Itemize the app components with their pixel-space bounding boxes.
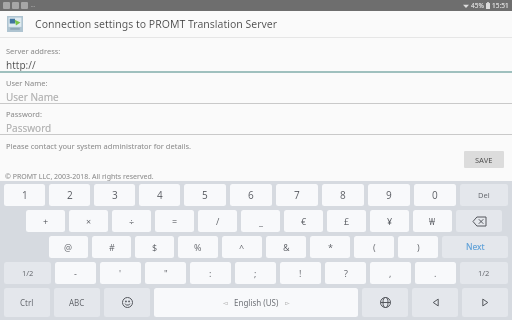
button[interactable]: !: [280, 262, 321, 284]
button[interactable]: *: [310, 236, 350, 258]
staticText: &: [283, 241, 290, 253]
staticText: ?: [344, 267, 348, 279]
staticText: ¥: [387, 215, 393, 227]
staticText: © PROMT LLC, 2003-2018. All rights reser…: [5, 172, 154, 181]
button[interactable]: ": [145, 262, 186, 284]
staticText: /: [216, 215, 220, 227]
button[interactable]: 6: [230, 184, 272, 206]
staticText: ABC: [69, 297, 85, 308]
staticText: 1: [22, 188, 28, 202]
staticText: 4: [157, 188, 163, 202]
button[interactable]: ₩: [413, 210, 452, 232]
staticText: SAVE: [475, 155, 493, 165]
button[interactable]: +: [26, 210, 65, 232]
staticText: :: [209, 267, 212, 279]
button[interactable]: 1/2: [460, 262, 508, 284]
button[interactable]: Move right: [462, 288, 508, 317]
button[interactable]: 1: [4, 184, 45, 206]
staticText: ...: [31, 2, 36, 9]
staticText: (: [373, 241, 376, 253]
button[interactable]: /: [198, 210, 237, 232]
button[interactable]: 2: [49, 184, 90, 206]
button[interactable]: 5: [184, 184, 226, 206]
button[interactable]: ?: [325, 262, 366, 284]
staticText: ₩: [429, 215, 436, 227]
button[interactable]: 8: [322, 184, 364, 206]
staticText: -: [74, 267, 77, 279]
staticText: 1/2: [22, 268, 34, 278]
button[interactable]: ,: [370, 262, 411, 284]
button[interactable]: &: [266, 236, 306, 258]
staticText: !: [299, 267, 302, 279]
button[interactable]: ¥: [370, 210, 409, 232]
staticText: Server address:: [6, 46, 61, 56]
staticText: User Name:: [6, 78, 48, 88]
button[interactable]: User Name: [0, 90, 512, 103]
button[interactable]: Move left: [412, 288, 458, 317]
staticText: 1/2: [478, 268, 490, 278]
button[interactable]: Del: [460, 184, 508, 206]
button[interactable]: #: [92, 236, 131, 258]
button[interactable]: ABC: [54, 288, 100, 317]
staticText: Password:: [6, 109, 42, 119]
staticText: 6: [248, 188, 254, 202]
button[interactable]: (: [354, 236, 394, 258]
staticText: .: [434, 267, 437, 279]
staticText: 2: [67, 188, 73, 202]
staticText: ;: [254, 267, 257, 279]
staticText: 8: [340, 188, 346, 202]
button[interactable]: =: [155, 210, 194, 232]
staticText: 5: [202, 188, 208, 202]
button[interactable]: ': [100, 262, 141, 284]
staticText: Del: [478, 190, 490, 200]
button[interactable]: 3: [94, 184, 135, 206]
staticText: http://: [6, 58, 36, 71]
staticText: 7: [294, 188, 300, 202]
button[interactable]: 4: [139, 184, 180, 206]
button[interactable]: 1/2: [4, 262, 51, 284]
button[interactable]: Space: [154, 288, 358, 317]
button[interactable]: ^: [222, 236, 262, 258]
button[interactable]: Ctrl: [4, 288, 50, 317]
button[interactable]: :: [190, 262, 231, 284]
button[interactable]: http://: [0, 58, 512, 71]
staticText: £: [344, 215, 350, 227]
staticText: $: [152, 241, 158, 253]
button[interactable]: 9: [368, 184, 410, 206]
staticText: 45%: [471, 1, 484, 10]
staticText: 15:51: [492, 1, 509, 10]
button[interactable]: ): [398, 236, 438, 258]
staticText: English (US): [234, 297, 279, 308]
button[interactable]: Next: [442, 236, 508, 258]
button[interactable]: SAVE: [464, 151, 504, 168]
button[interactable]: 7: [276, 184, 318, 206]
button[interactable]: ;: [235, 262, 276, 284]
staticText: @: [64, 241, 73, 253]
staticText: *: [328, 241, 333, 253]
staticText: ^: [239, 241, 245, 253]
staticText: Please contact your system administrator…: [6, 141, 192, 151]
button[interactable]: $: [135, 236, 174, 258]
button[interactable]: £: [327, 210, 366, 232]
button[interactable]: @: [49, 236, 88, 258]
staticText: €: [301, 215, 307, 227]
staticText: User Name: [6, 90, 59, 103]
button[interactable]: Password: [0, 121, 512, 134]
staticText: 3: [112, 188, 118, 202]
button[interactable]: 0: [414, 184, 456, 206]
button[interactable]: -: [55, 262, 96, 284]
button[interactable]: %: [178, 236, 218, 258]
button[interactable]: _: [241, 210, 280, 232]
staticText: Ctrl: [20, 297, 34, 308]
staticText: _: [259, 215, 263, 227]
button[interactable]: .: [415, 262, 456, 284]
button[interactable]: ×: [69, 210, 108, 232]
staticText: ,: [389, 267, 392, 279]
button[interactable]: Emoji: [104, 288, 150, 317]
staticText: ': [119, 267, 122, 279]
button[interactable]: Backspace: [456, 210, 502, 232]
button[interactable]: ÷: [112, 210, 151, 232]
button[interactable]: Change language: [362, 288, 408, 317]
staticText: Password: [6, 121, 52, 134]
button[interactable]: €: [284, 210, 323, 232]
